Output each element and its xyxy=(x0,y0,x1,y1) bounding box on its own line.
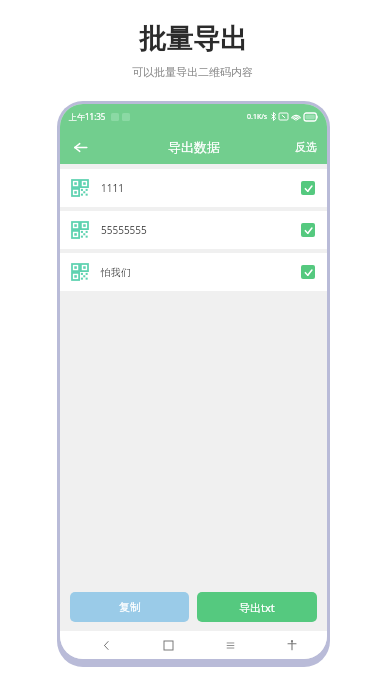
button[interactable]: 1111 xyxy=(60,169,327,207)
button[interactable]: 怕我们 xyxy=(60,253,327,291)
button[interactable]: Selected xyxy=(301,223,315,237)
staticText: 1111 xyxy=(101,181,124,195)
staticText: 复制 xyxy=(119,600,141,614)
button[interactable]: 55555555 xyxy=(60,211,327,249)
staticText: 怕我们 xyxy=(101,266,131,279)
staticText: 可以批量导出二维码内容 xyxy=(132,65,253,79)
staticText: 批量导出 xyxy=(139,22,247,56)
staticText: 55555555 xyxy=(101,223,147,237)
button[interactable]: Selected xyxy=(301,181,315,195)
button[interactable]: Accessibility xyxy=(280,633,304,657)
button[interactable]: 导出txt xyxy=(197,592,317,622)
button[interactable]: Recents xyxy=(218,633,242,657)
button[interactable]: 复制 xyxy=(70,592,189,622)
staticText: 导出txt xyxy=(239,600,275,615)
button[interactable]: Selected xyxy=(301,265,315,279)
staticText: 反选 xyxy=(295,140,317,154)
button[interactable]: 反选 xyxy=(289,135,323,159)
staticText: 上午11:35 xyxy=(69,111,106,122)
button[interactable]: Home xyxy=(156,633,180,657)
button[interactable]: Back xyxy=(65,132,95,162)
staticText: 0.1K/s xyxy=(247,112,268,122)
button[interactable]: Back xyxy=(94,633,118,657)
staticText: 导出数据 xyxy=(168,139,220,155)
